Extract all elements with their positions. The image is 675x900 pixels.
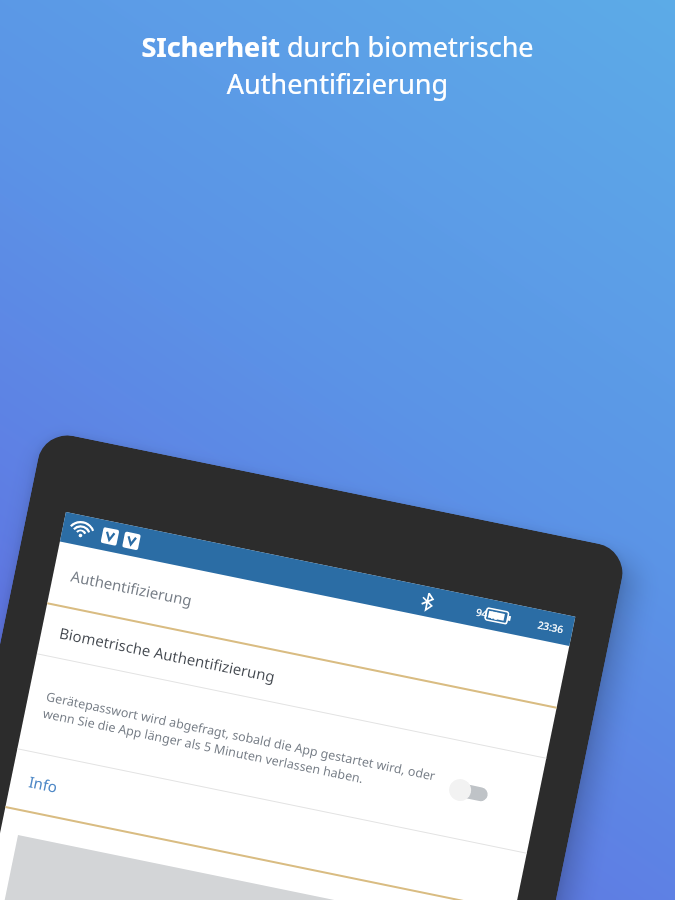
staticText: Gerätepasswort wird abgefragt, sobald di… xyxy=(41,688,440,802)
staticText: Info xyxy=(27,771,59,797)
button[interactable]: Info xyxy=(6,749,527,900)
button[interactable]: Gerätepasswort wird abgefragt, sobald di… xyxy=(17,654,546,853)
button[interactable]: Authentifizierung xyxy=(47,541,569,707)
staticText: SIcherheit durch biometrische Authentifi… xyxy=(54,28,621,102)
staticText: 23:36 xyxy=(537,617,565,636)
staticText: 94 % xyxy=(475,605,500,623)
staticText: Biometrische Authentifizierung xyxy=(58,622,277,686)
button[interactable]: Tablet showing biometric authentication … xyxy=(0,430,628,900)
staticText: Authentifizierung xyxy=(69,566,194,610)
button[interactable]: Biometrische Authentifizierung xyxy=(37,604,556,758)
